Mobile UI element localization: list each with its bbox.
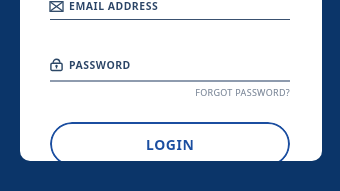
staticText: LOGIN	[146, 135, 195, 154]
button[interactable]: LOGIN	[50, 122, 290, 161]
other: Password	[50, 58, 63, 71]
other: Email	[50, 0, 63, 13]
button[interactable]: Email	[50, 0, 292, 14]
staticText: PASSWORD	[69, 58, 131, 72]
staticText: EMAIL ADDRESS	[69, 0, 159, 13]
staticText: FORGOT PASSWORD?	[195, 86, 290, 98]
button[interactable]: Password	[50, 56, 292, 73]
button[interactable]: FORGOT PASSWORD?	[170, 85, 290, 99]
